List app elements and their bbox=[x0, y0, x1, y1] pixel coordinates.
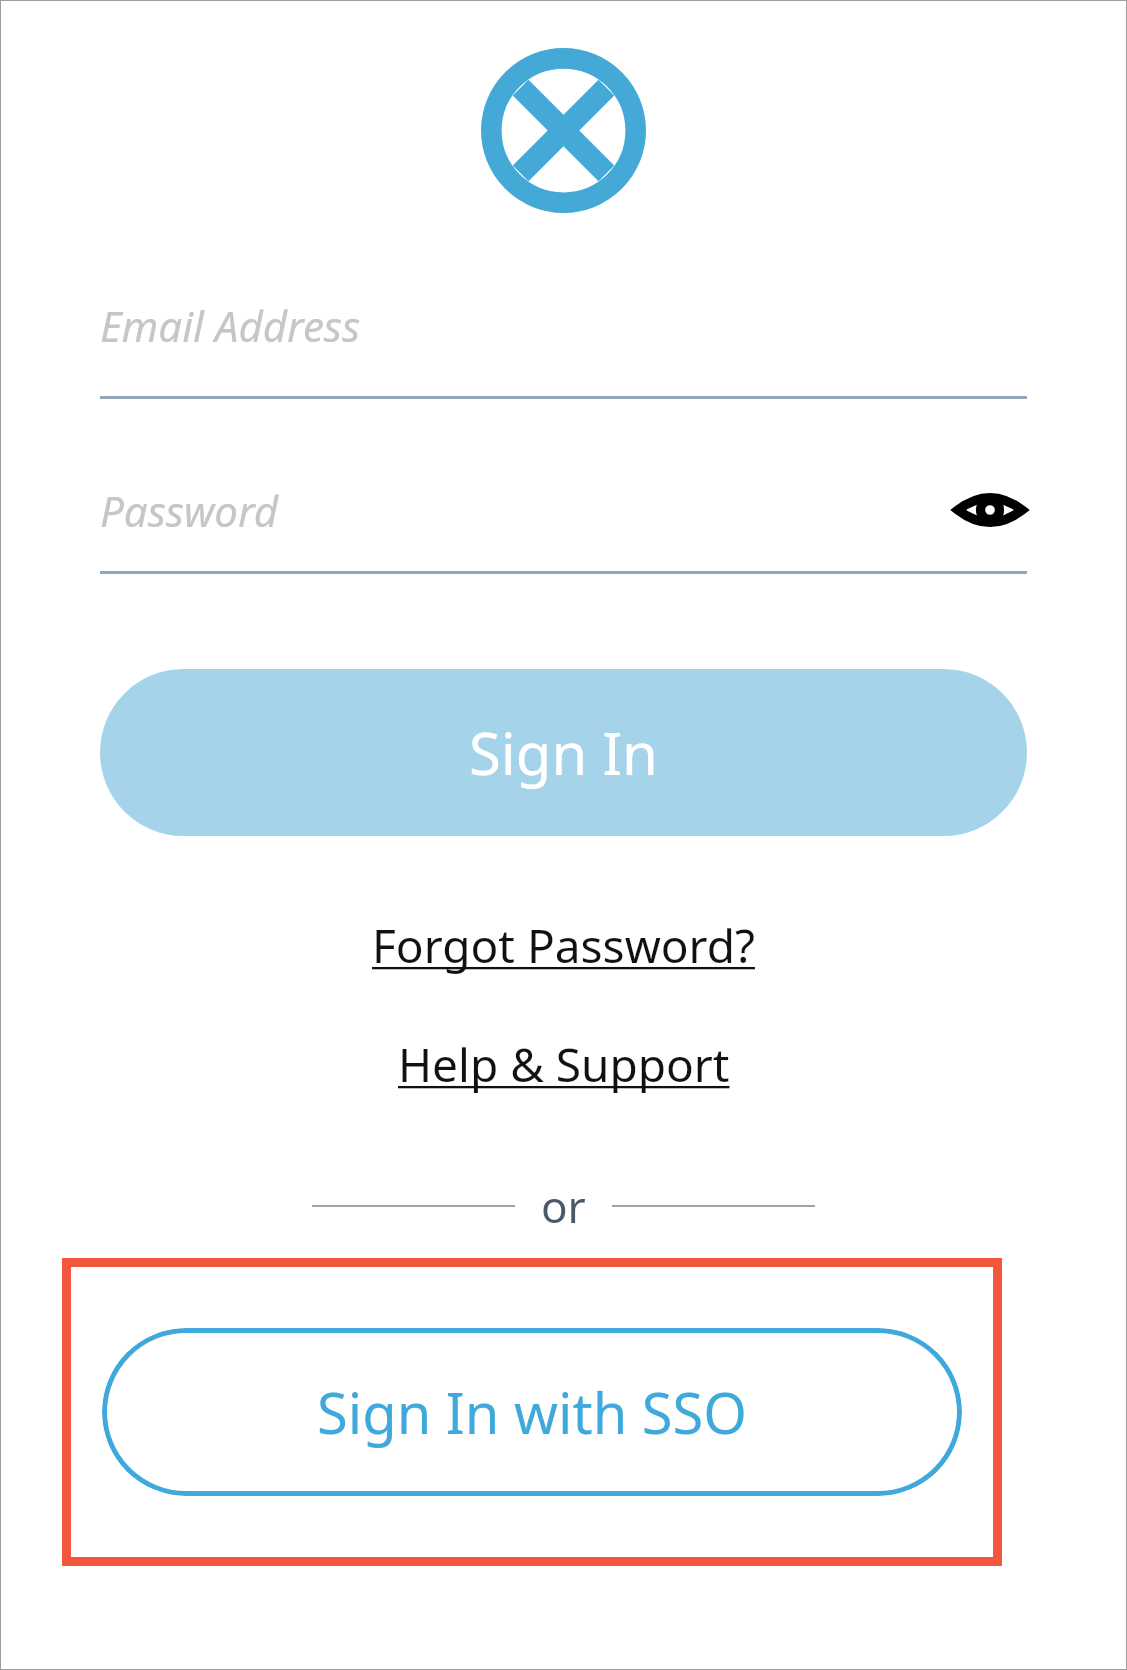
staticText: or bbox=[541, 1176, 586, 1236]
staticText: Sign In bbox=[469, 713, 658, 792]
staticText: Sign In with SSO bbox=[317, 1374, 748, 1450]
button[interactable]: Forgot Password? bbox=[356, 908, 771, 983]
staticText: Password bbox=[100, 482, 279, 539]
button[interactable]: Help & Support bbox=[382, 1027, 746, 1102]
button[interactable]: Sign In bbox=[100, 669, 1027, 836]
button[interactable]: Sign In with SSO bbox=[102, 1328, 962, 1496]
button[interactable]: Password bbox=[100, 482, 953, 539]
button[interactable]: Email Address bbox=[100, 297, 1027, 399]
staticText: Forgot Password? bbox=[372, 914, 755, 977]
button[interactable]: Show password bbox=[953, 473, 1027, 547]
staticText: Help & Support bbox=[398, 1033, 730, 1096]
staticText: Email Address bbox=[100, 297, 361, 354]
